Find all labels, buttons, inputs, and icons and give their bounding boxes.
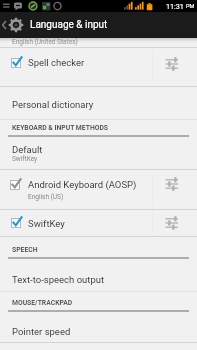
staticText: SwiftKey bbox=[28, 218, 65, 229]
staticText: 11:31 bbox=[166, 2, 186, 10]
button[interactable]: SwiftKey bbox=[0, 210, 197, 236]
button[interactable]: Language & input bbox=[0, 12, 197, 38]
staticText: Personal dictionary bbox=[12, 99, 94, 110]
staticText: Default bbox=[12, 144, 43, 155]
button[interactable]: Pointer speed bbox=[0, 313, 197, 342]
staticText: Spell checker bbox=[28, 57, 85, 68]
staticText: SPEECH bbox=[12, 246, 38, 254]
staticText: KEYBOARD & INPUT METHODS bbox=[12, 124, 108, 132]
button[interactable]: Android Keyboard (AOSP) bbox=[0, 170, 197, 209]
button[interactable]: Default bbox=[0, 138, 197, 169]
staticText: Pointer speed bbox=[12, 326, 71, 337]
staticText: SwiftKey bbox=[12, 155, 38, 163]
button[interactable]: Spell checker bbox=[0, 48, 197, 86]
button[interactable]: Personal dictionary bbox=[0, 87, 197, 119]
staticText: Language & input bbox=[30, 19, 108, 31]
staticText: Android Keyboard (AOSP) bbox=[28, 179, 137, 190]
staticText: PM bbox=[186, 3, 195, 10]
staticText: MOUSE/TRACKPAD bbox=[12, 299, 73, 307]
staticText: English (US) bbox=[28, 193, 64, 201]
button[interactable]: Text-to-speech output bbox=[0, 260, 197, 291]
staticText: Text-to-speech output bbox=[12, 274, 105, 285]
staticText: English (United States) bbox=[12, 38, 78, 46]
